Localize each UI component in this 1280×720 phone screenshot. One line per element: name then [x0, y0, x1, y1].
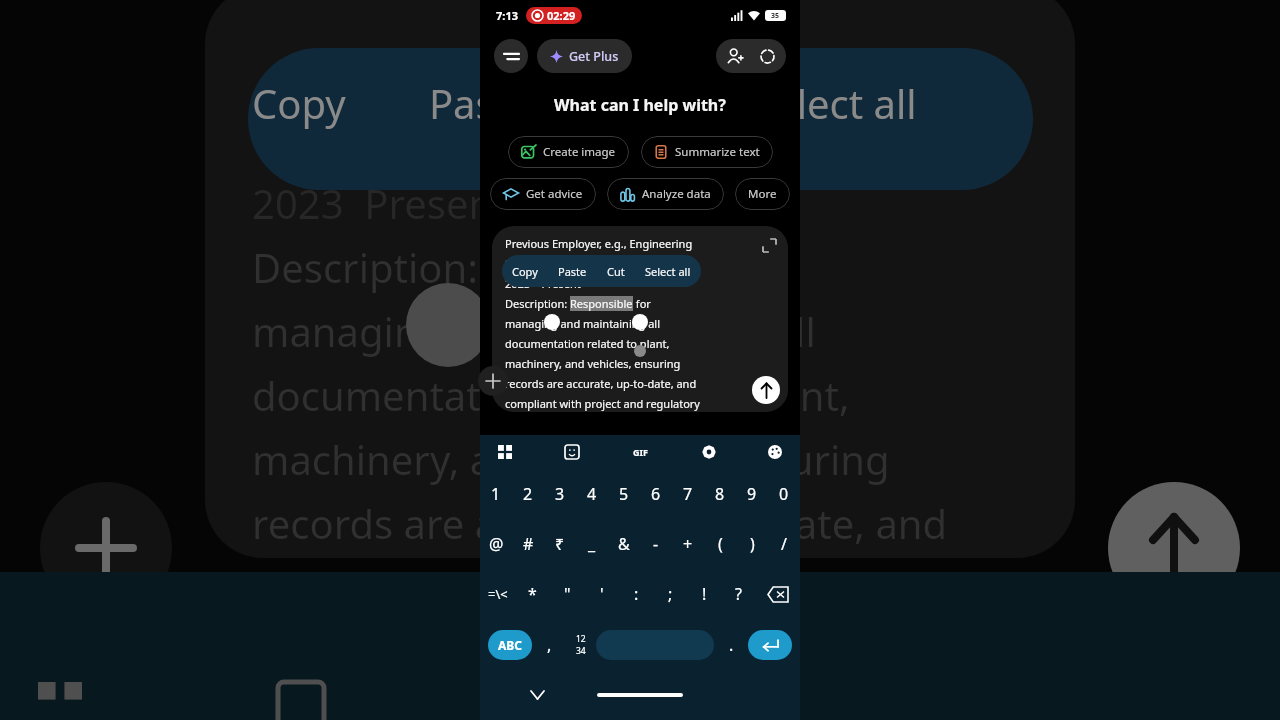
staticText: 6 — [651, 483, 661, 505]
button[interactable]: . — [714, 619, 748, 671]
button[interactable]: ABC — [488, 630, 532, 660]
button[interactable]: Apps — [492, 439, 518, 465]
button[interactable]: 1 — [480, 469, 512, 519]
staticText: 0 — [779, 483, 789, 505]
button[interactable]: ( — [704, 519, 736, 569]
button[interactable]: 2 — [512, 469, 544, 519]
staticText: ( — [718, 533, 723, 555]
button[interactable]: Settings — [696, 439, 722, 465]
button[interactable]: Enter — [748, 630, 792, 660]
staticText: 3 — [555, 483, 565, 505]
staticText: : — [634, 583, 639, 605]
staticText: Select all — [645, 264, 691, 279]
button[interactable]: Menu — [494, 39, 528, 73]
button[interactable]: * — [515, 569, 550, 619]
button[interactable]: / — [768, 519, 800, 569]
button[interactable]: ) — [736, 519, 768, 569]
button[interactable]: @ — [480, 519, 512, 569]
button[interactable]: ? — [721, 569, 755, 619]
staticText: , — [547, 634, 552, 656]
button[interactable]: 8 — [704, 469, 736, 519]
staticText: Create image — [543, 144, 616, 160]
staticText: ₹ — [555, 533, 565, 555]
button[interactable]: " — [550, 569, 585, 619]
staticText: ABC — [498, 637, 522, 653]
button[interactable]: Get Plus — [537, 39, 632, 73]
button[interactable]: Summarize text — [641, 136, 773, 168]
button[interactable]: More — [735, 178, 790, 210]
button[interactable]: Analyze data — [607, 178, 724, 210]
staticText: 7 — [683, 483, 693, 505]
button[interactable]: # — [512, 519, 544, 569]
button[interactable]: GIF — [625, 437, 655, 467]
button[interactable]: 3 — [544, 469, 576, 519]
staticText: 2023 Present — [252, 176, 508, 230]
staticText: Responsible — [570, 296, 633, 311]
button[interactable]: ' — [585, 569, 619, 619]
button[interactable]: , — [532, 619, 566, 671]
staticText: ? — [735, 583, 742, 605]
button[interactable]: Select all — [635, 255, 701, 287]
button[interactable]: Voice mode — [751, 40, 783, 72]
staticText: ; — [668, 583, 673, 605]
staticText: * — [528, 583, 537, 605]
button[interactable]: & — [608, 519, 640, 569]
button[interactable]: Expand — [760, 236, 778, 254]
button[interactable]: Copy — [502, 255, 548, 287]
staticText: GIF — [633, 446, 648, 458]
button[interactable]: 4 — [576, 469, 608, 519]
button[interactable]: 6 — [640, 469, 672, 519]
button[interactable]: Paste — [548, 255, 597, 287]
button[interactable]: + — [672, 519, 704, 569]
button[interactable]: Get advice — [490, 178, 596, 210]
button[interactable]: Space — [596, 630, 714, 660]
staticText: ) — [750, 533, 755, 555]
staticText: More — [748, 186, 777, 202]
staticText: 5 — [619, 483, 629, 505]
staticText: documentation related to plant, — [252, 368, 850, 422]
button[interactable]: Add people — [719, 40, 751, 72]
staticText: Description: — [252, 240, 478, 294]
staticText: =\< — [488, 585, 508, 603]
button[interactable]: ! — [687, 569, 721, 619]
staticText: Get advice — [526, 186, 583, 202]
button[interactable]: 5 — [608, 469, 640, 519]
button[interactable]: Create image — [508, 136, 629, 168]
button[interactable]: : — [619, 569, 653, 619]
button[interactable]: Hide keyboard — [526, 684, 548, 706]
button[interactable]: 9 — [736, 469, 768, 519]
staticText: Previous Employer, e.g., Engineering — [505, 236, 693, 251]
staticText: 4 — [587, 483, 597, 505]
staticText: machinery, and vehicles, ensuring — [252, 432, 890, 486]
staticText: # — [523, 533, 534, 555]
staticText: ' — [600, 583, 604, 605]
button[interactable]: Stickers — [559, 439, 585, 465]
button[interactable]: 7 — [672, 469, 704, 519]
button[interactable]: ; — [653, 569, 687, 619]
button[interactable]: Backspace — [755, 569, 800, 619]
button[interactable]: 0 — [768, 469, 800, 519]
staticText: Copy Paste Cut Select all — [252, 76, 917, 130]
button[interactable]: ₹ — [544, 519, 576, 569]
staticText: records are accurate, up-to-date, and — [252, 496, 948, 550]
staticText: + — [683, 533, 693, 555]
button[interactable]: Attach — [478, 366, 508, 396]
staticText: managing and maintaining all — [252, 304, 816, 358]
button[interactable]: =\< — [480, 569, 515, 619]
staticText: . — [729, 634, 734, 656]
button[interactable]: 12 — [566, 619, 596, 671]
button[interactable]: Send — [752, 376, 780, 404]
button[interactable]: - — [640, 519, 672, 569]
staticText: Site Facility Manager — ElectroArabia, — [505, 256, 701, 271]
staticText: @ — [489, 533, 504, 555]
button[interactable]: Cut — [597, 255, 635, 287]
staticText: 02:29 — [547, 8, 576, 23]
staticText: _ — [588, 533, 596, 555]
staticText: records are accurate, up-to-date, and — [505, 376, 697, 391]
staticText: 2023 – Present — [505, 276, 581, 291]
staticText: 2 — [523, 483, 533, 505]
button[interactable]: _ — [576, 519, 608, 569]
staticText: 12 — [576, 633, 586, 645]
staticText: Paste — [558, 264, 587, 279]
button[interactable]: Theme — [762, 439, 788, 465]
